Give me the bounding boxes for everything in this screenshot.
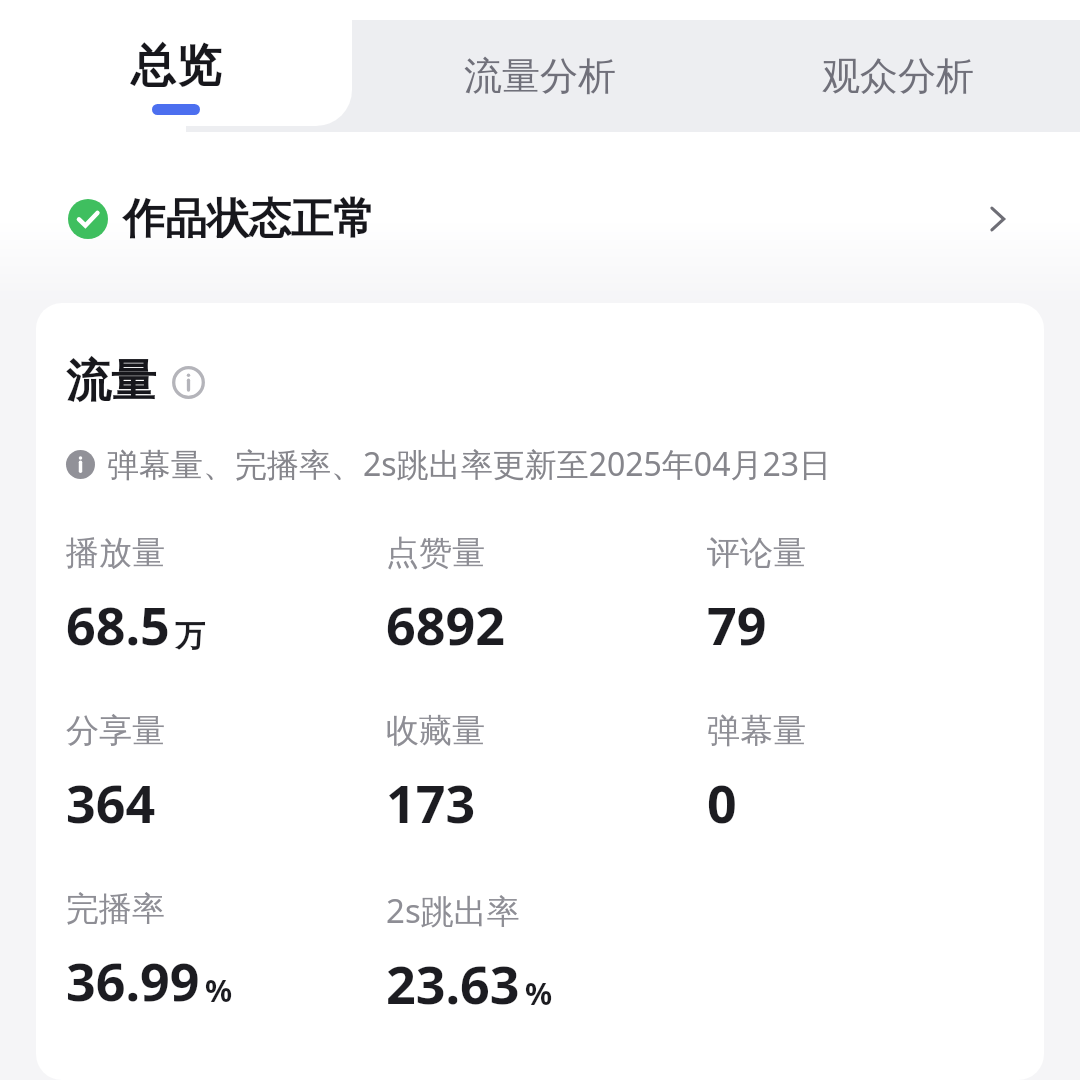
staticText: % [205, 970, 233, 1011]
staticText: 万 [175, 617, 205, 655]
staticText: 2s跳出率 [386, 888, 520, 933]
staticText: 0 [707, 767, 737, 838]
button[interactable]: 观众分析 [757, 20, 1039, 132]
staticText: 弹幕量、完播率、2s跳出率更新至2025年04月23日 [107, 442, 832, 486]
staticText: 总览 [131, 38, 221, 95]
staticText: 分享量 [66, 710, 165, 752]
button[interactable]: 流量 [66, 353, 206, 410]
staticText: 评论量 [707, 532, 806, 574]
staticText: 79 [707, 589, 767, 660]
staticText: 173 [386, 767, 476, 838]
staticText: 68.5 [66, 589, 170, 660]
other: 流量说明 [170, 364, 206, 400]
staticText: 23.63 [386, 948, 520, 1019]
staticText: % [525, 973, 553, 1014]
staticText: 36.99 [66, 945, 200, 1016]
staticText: 流量 [66, 353, 156, 410]
other: 查看作品状态 [974, 196, 1020, 242]
button[interactable]: 作品状态正常 [0, 140, 1080, 298]
staticText: 完播率 [66, 888, 165, 930]
staticText: 弹幕量 [707, 710, 806, 752]
staticText: 6892 [386, 589, 505, 660]
staticText: 播放量 [66, 532, 165, 574]
staticText: 364 [66, 767, 156, 838]
staticText: 收藏量 [386, 710, 485, 752]
staticText: 观众分析 [822, 52, 974, 100]
button[interactable]: 流量分析 [399, 20, 681, 132]
staticText: 流量分析 [464, 52, 616, 100]
staticText: 作品状态正常 [123, 193, 375, 246]
button[interactable]: 总览 [0, 0, 352, 126]
staticText: 点赞量 [386, 532, 485, 574]
